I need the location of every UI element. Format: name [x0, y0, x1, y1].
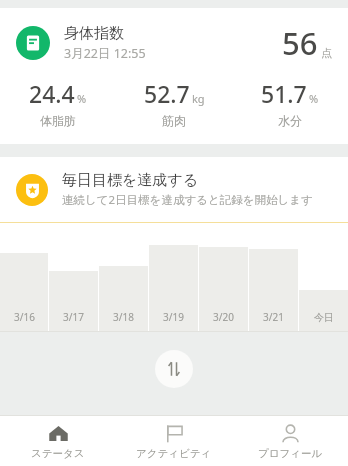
staticText: 3月22日 12:55	[64, 45, 146, 62]
staticText: ステータス	[31, 447, 85, 460]
staticText: 3/19	[163, 310, 184, 324]
staticText: 点	[321, 46, 332, 60]
staticText: 56	[282, 22, 318, 64]
staticText: 3/21	[263, 310, 284, 324]
button[interactable]: アクティビティ	[116, 416, 232, 466]
staticText: 3/17	[63, 310, 84, 324]
staticText: 3/18	[113, 310, 134, 324]
staticText: プロフィール	[258, 447, 323, 460]
staticText: 水分	[278, 113, 302, 128]
button[interactable]: Sync data	[155, 350, 193, 388]
button[interactable]: プロフィール	[232, 416, 348, 466]
button[interactable]: 52.7	[116, 78, 232, 128]
staticText: 51.7	[261, 78, 307, 109]
staticText: 3/20	[213, 310, 234, 324]
button[interactable]: 毎日目標を達成する	[0, 157, 348, 223]
staticText: %	[77, 91, 87, 106]
staticText: 毎日目標を達成する	[62, 171, 199, 190]
staticText: 今日	[314, 311, 334, 324]
button[interactable]: 3/16	[0, 223, 348, 331]
staticText: 3/16	[14, 310, 35, 324]
staticText: アクティビティ	[136, 447, 212, 460]
staticText: 筋肉	[162, 113, 186, 128]
staticText: 体脂肪	[40, 113, 76, 128]
staticText: kg	[192, 91, 205, 106]
button[interactable]: ステータス	[0, 416, 116, 466]
staticText: 52.7	[144, 78, 190, 109]
button[interactable]: 51.7	[232, 78, 348, 128]
staticText: 連続して2日目標を達成すると記録を開始します	[62, 192, 313, 208]
button[interactable]: 24.4	[0, 78, 116, 128]
button[interactable]: 身体指数	[0, 8, 348, 144]
staticText: 24.4	[29, 78, 75, 109]
staticText: %	[309, 91, 319, 106]
staticText: 身体指数	[64, 24, 124, 43]
